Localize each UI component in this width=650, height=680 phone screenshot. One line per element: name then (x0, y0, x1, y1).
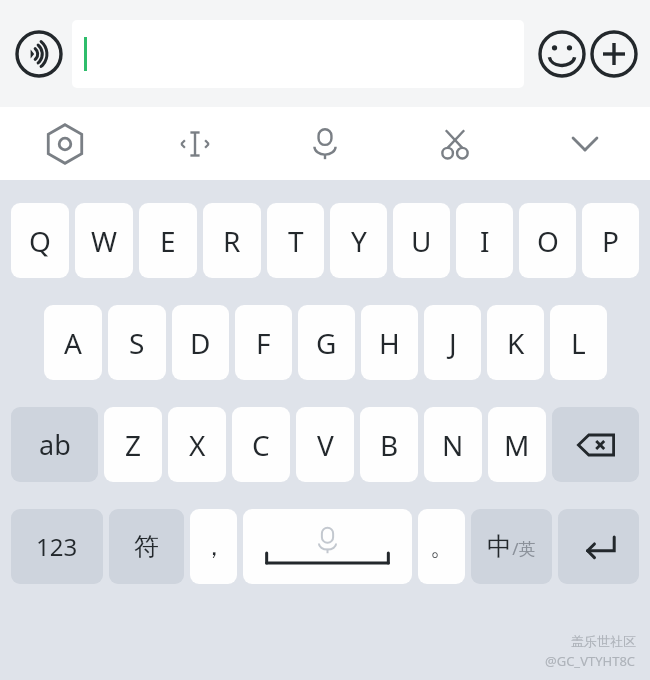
button[interactable]: ab (11, 407, 98, 482)
button[interactable]: M (488, 407, 546, 482)
staticText: E (160, 222, 176, 260)
staticText: A (64, 324, 82, 362)
staticText: ab (39, 426, 71, 463)
button[interactable]: Y (330, 203, 387, 278)
staticText: K (507, 324, 525, 362)
button[interactable]: Move cursor (130, 107, 260, 180)
button[interactable]: L (550, 305, 607, 380)
button[interactable]: A (44, 305, 102, 380)
button[interactable]: Hide keyboard (520, 107, 650, 180)
button[interactable]: F (235, 305, 292, 380)
staticText: I (480, 222, 490, 260)
staticText: O (537, 222, 559, 260)
button[interactable]: 中/英 (471, 509, 552, 584)
button[interactable]: O (519, 203, 576, 278)
staticText: H (379, 324, 400, 362)
other: Backspace (552, 407, 639, 482)
button[interactable]: ， (190, 509, 237, 584)
staticText: R (223, 222, 241, 260)
button[interactable]: T (267, 203, 324, 278)
staticText: F (256, 324, 271, 362)
staticText: M (504, 426, 530, 464)
button[interactable]: E (139, 203, 197, 278)
staticText: W (91, 222, 118, 260)
staticText: D (190, 324, 211, 362)
staticText: 中/英 (487, 531, 536, 562)
staticText: @GC_VTYHT8C (545, 652, 636, 670)
staticText: L (571, 324, 586, 362)
staticText: Q (29, 222, 51, 260)
staticText: J (449, 324, 457, 362)
button[interactable]: C (232, 407, 290, 482)
staticText: 符 (134, 531, 159, 562)
staticText: ， (202, 532, 226, 562)
staticText: S (129, 324, 145, 362)
button[interactable]: U (393, 203, 450, 278)
button[interactable]: Keyboard settings (0, 107, 130, 180)
staticText: T (288, 222, 304, 260)
staticText: 盖乐世社区 (571, 633, 636, 649)
button[interactable]: N (424, 407, 482, 482)
button[interactable]: V (296, 407, 354, 482)
button[interactable] (552, 407, 639, 482)
button[interactable]: H (361, 305, 418, 380)
button[interactable]: W (75, 203, 133, 278)
staticText: P (602, 222, 619, 260)
button[interactable]: S (108, 305, 166, 380)
button[interactable]: Z (104, 407, 162, 482)
staticText: Y (351, 222, 367, 260)
button[interactable]: Cut (390, 107, 520, 180)
staticText: Z (125, 426, 142, 464)
staticText: C (252, 426, 270, 464)
button[interactable]: D (172, 305, 229, 380)
button[interactable]: Voice input (12, 27, 66, 81)
button[interactable]: P (582, 203, 639, 278)
staticText: 。 (430, 532, 454, 562)
staticText: 123 (36, 530, 78, 563)
button[interactable]: 符 (109, 509, 184, 584)
button[interactable]: J (424, 305, 481, 380)
button[interactable]: 。 (418, 509, 465, 584)
other: Enter (558, 509, 639, 584)
button[interactable]: Emoji (536, 28, 588, 80)
button[interactable]: G (298, 305, 355, 380)
button[interactable]: Add (588, 28, 640, 80)
button[interactable]: Voice typing (260, 107, 390, 180)
button[interactable]: K (487, 305, 544, 380)
button[interactable]: X (168, 407, 226, 482)
staticText: X (189, 426, 206, 464)
button[interactable] (243, 509, 412, 584)
button[interactable] (558, 509, 639, 584)
staticText: B (380, 426, 399, 464)
button[interactable]: 123 (11, 509, 103, 584)
button[interactable]: B (360, 407, 418, 482)
staticText: N (442, 426, 464, 464)
staticText: G (316, 324, 337, 362)
staticText: U (411, 222, 432, 260)
button[interactable]: R (203, 203, 261, 278)
button[interactable]: I (456, 203, 513, 278)
other: Space (243, 509, 412, 584)
staticText: V (317, 426, 334, 464)
button[interactable] (72, 20, 524, 88)
button[interactable]: Q (11, 203, 69, 278)
